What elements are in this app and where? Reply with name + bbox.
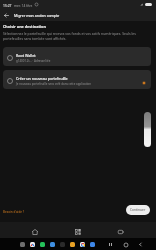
staticText: Je nouveau portefeuille sera créé dans c… bbox=[16, 82, 92, 86]
button[interactable]: Continuer bbox=[126, 205, 150, 215]
button[interactable]: App 1 bbox=[30, 242, 35, 247]
button[interactable]: App 0 bbox=[20, 242, 25, 247]
button[interactable]: Home bbox=[29, 226, 41, 238]
button[interactable]: App 4 bbox=[60, 242, 65, 247]
staticText: Créer un nouveau portefeuille bbox=[16, 76, 68, 81]
button[interactable]: Recents bbox=[106, 240, 115, 249]
staticText: Root Wallet bbox=[16, 53, 36, 58]
button[interactable]: Wallet bbox=[115, 226, 127, 238]
staticText: Besoin d'aide ? bbox=[3, 210, 25, 214]
button[interactable]: Back bbox=[136, 240, 145, 249]
staticText: mer. 14 févr. bbox=[14, 3, 33, 7]
button[interactable]: Scroll bbox=[144, 112, 151, 147]
button[interactable]: Root Wallet bbox=[3, 47, 151, 66]
staticText: Migrer mon ancien compte bbox=[14, 13, 60, 18]
button[interactable]: Créer un nouveau portefeuille bbox=[3, 70, 151, 89]
staticText: Continuer bbox=[130, 208, 146, 212]
button[interactable]: Besoin d'aide ? bbox=[2, 208, 26, 216]
button[interactable]: App 5 bbox=[70, 242, 75, 247]
button[interactable]: App 3 bbox=[50, 242, 55, 247]
button[interactable]: Home bbox=[121, 240, 130, 249]
staticText: Choisir une destination bbox=[3, 24, 46, 29]
button[interactable]: App 2 bbox=[40, 242, 45, 247]
button[interactable]: Scan QR code bbox=[72, 226, 84, 238]
staticText: g14001.2t… · Adresse liée bbox=[16, 59, 51, 63]
button[interactable]: Back bbox=[0, 9, 12, 21]
button[interactable]: App 7 bbox=[90, 242, 95, 247]
staticText: 15:27 bbox=[3, 3, 12, 7]
staticText: Sélectionnez le portefeuille qui recevra… bbox=[3, 31, 152, 41]
button[interactable]: App 6 bbox=[80, 242, 85, 247]
